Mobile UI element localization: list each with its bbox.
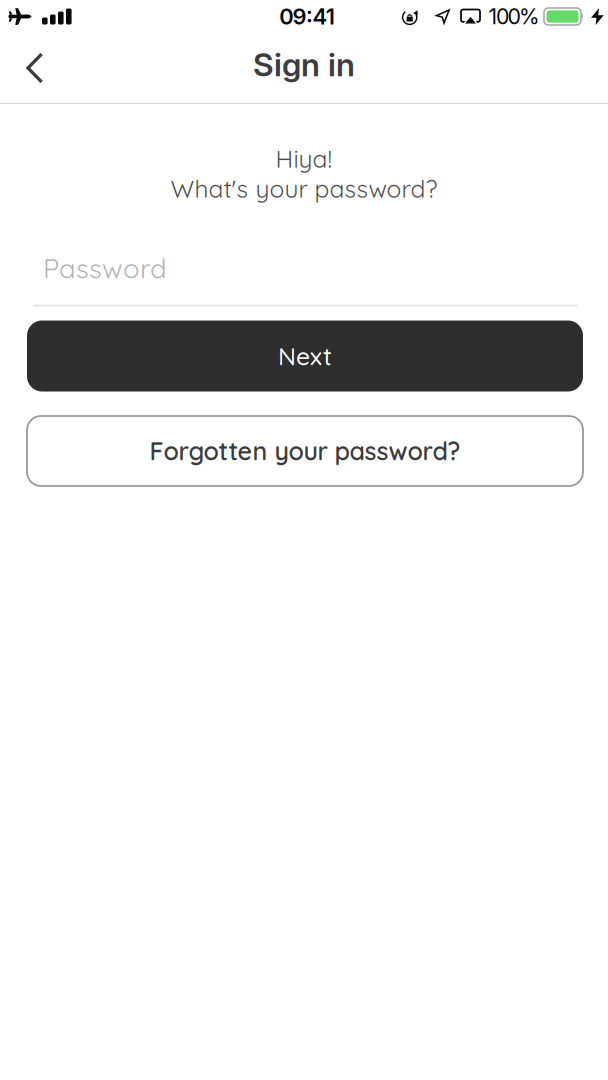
staticText: 09:41	[279, 3, 335, 30]
staticText: What's your password?	[170, 173, 437, 204]
staticText: Forgotten your password?	[149, 435, 460, 467]
button[interactable]: Next	[27, 320, 583, 391]
button[interactable]: Password	[0, 251, 608, 306]
button[interactable]: Back	[0, 38, 61, 98]
staticText: Sign in	[253, 45, 355, 84]
staticText: Password	[43, 251, 167, 285]
staticText: 100%	[488, 4, 540, 29]
staticText: Next	[278, 341, 332, 371]
button[interactable]: Forgotten your password?	[27, 416, 583, 486]
staticText: Hiya!	[275, 143, 332, 174]
